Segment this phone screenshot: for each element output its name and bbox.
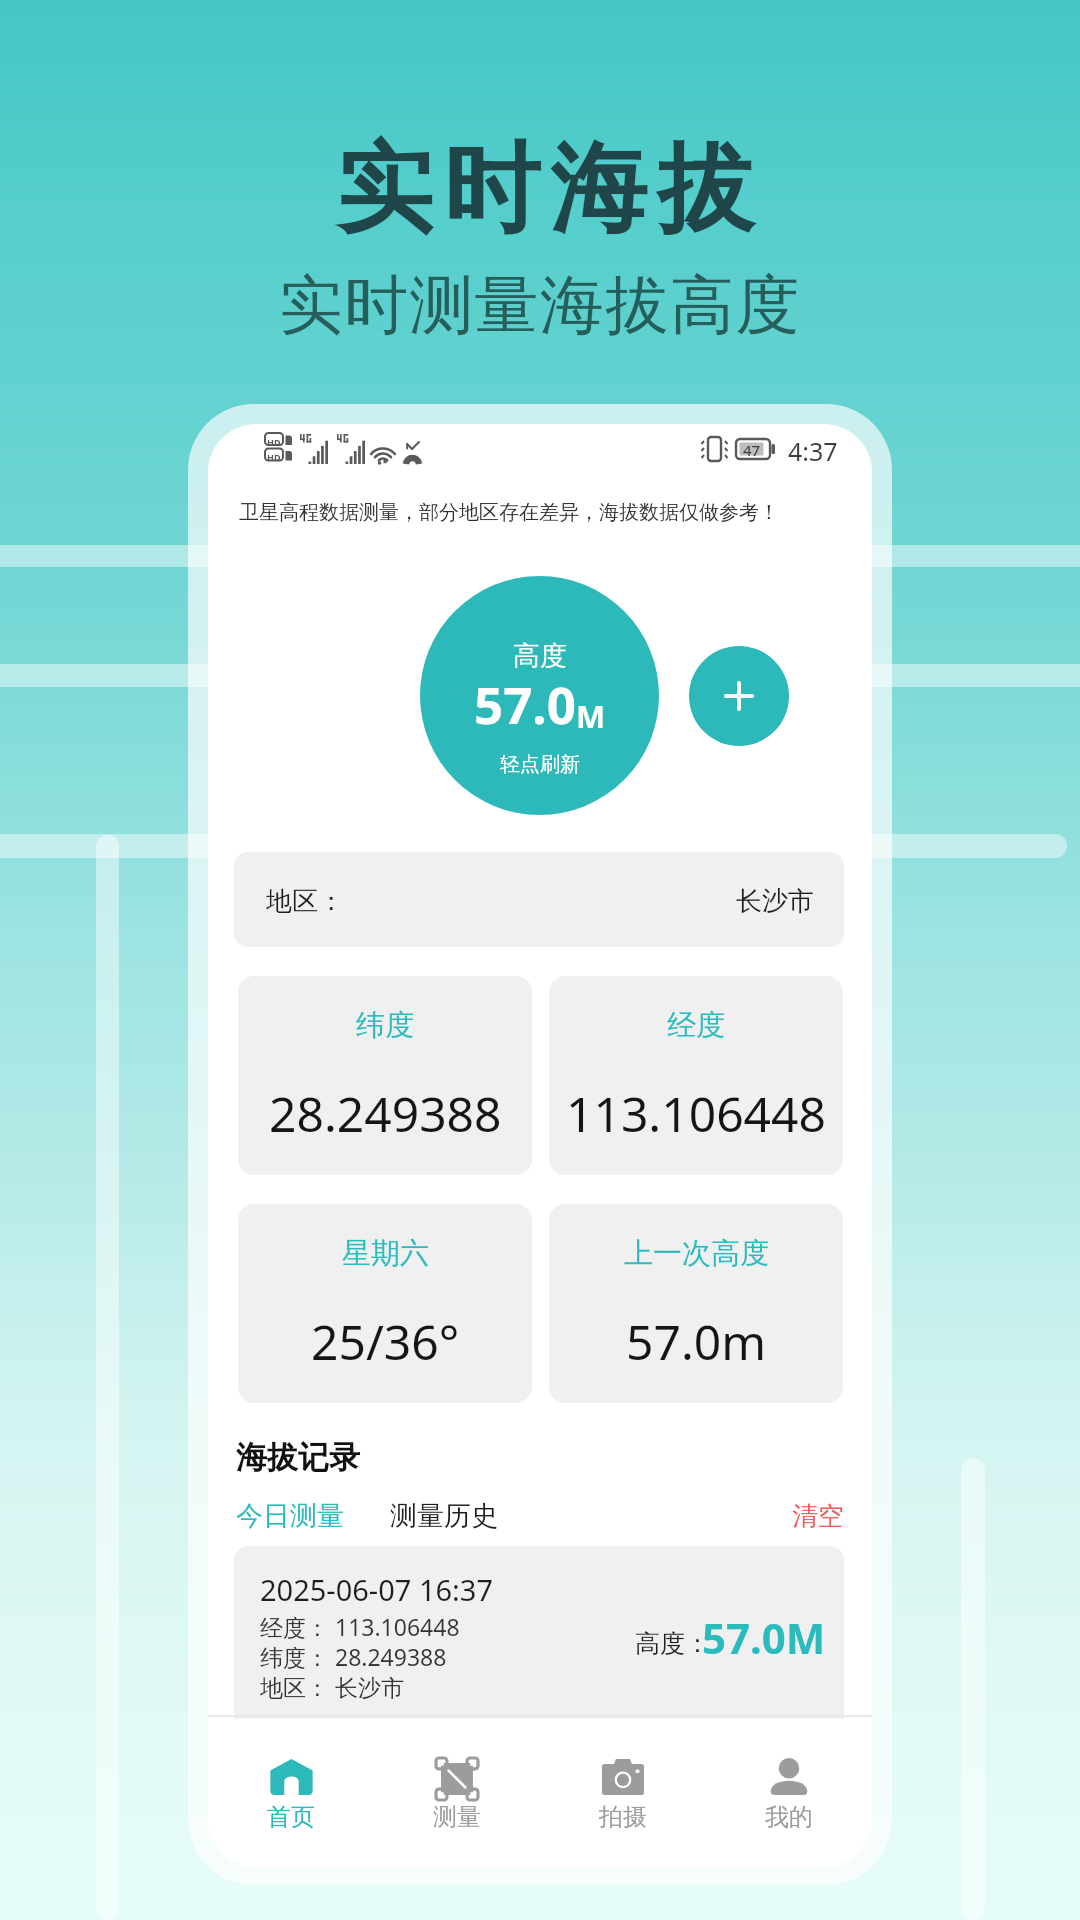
staticText: 57.0M: [702, 1609, 826, 1666]
button[interactable]: 今日测量: [236, 1492, 344, 1540]
button[interactable]: 测量: [374, 1717, 540, 1832]
button[interactable]: 测量历史: [390, 1492, 498, 1540]
staticText: 实时海拔: [331, 129, 759, 251]
staticText: 首页: [267, 1802, 315, 1832]
staticText: 卫星高程数据测量，部分地区存在差异，海拔数据仅做参考！: [239, 500, 779, 525]
button[interactable]: 纬度: [238, 976, 532, 1175]
staticText: 测量历史: [390, 1499, 498, 1533]
staticText: M: [576, 695, 606, 737]
button[interactable]: 首页: [208, 1717, 374, 1832]
staticText: 今日测量: [236, 1499, 344, 1533]
staticText: 海拔记录: [236, 1438, 360, 1477]
staticText: 我的: [765, 1802, 813, 1832]
staticText: 地区： 长沙市: [260, 1671, 404, 1702]
staticText: 57.0m: [626, 1309, 767, 1374]
button[interactable]: 星期六: [238, 1204, 532, 1403]
staticText: 57.0: [474, 669, 576, 738]
button[interactable]: 清空: [792, 1492, 844, 1540]
staticText: 轻点刷新: [500, 752, 580, 777]
staticText: 经度: [667, 1007, 725, 1044]
staticText: HD: [267, 451, 281, 463]
button[interactable]: Add measurement: [689, 646, 789, 746]
staticText: HD: [267, 436, 281, 448]
button[interactable]: 上一次高度: [549, 1204, 843, 1403]
staticText: 25/36°: [311, 1309, 460, 1374]
staticText: 4:37: [788, 434, 838, 468]
button[interactable]: 地区：: [234, 852, 844, 947]
staticText: 高度: [513, 639, 567, 673]
staticText: 高度：: [635, 1628, 710, 1659]
staticText: 地区：: [266, 885, 344, 918]
staticText: 实时测量海拔高度: [279, 265, 801, 346]
staticText: 113.106448: [566, 1081, 826, 1146]
button[interactable]: 拍摄: [540, 1717, 706, 1832]
button[interactable]: 高度: [420, 576, 659, 815]
staticText: 拍摄: [599, 1802, 647, 1832]
staticText: 星期六: [342, 1235, 429, 1272]
staticText: 测量: [433, 1802, 481, 1832]
staticText: 清空: [792, 1500, 844, 1533]
staticText: 上一次高度: [624, 1235, 769, 1272]
staticText: 纬度: [356, 1007, 414, 1044]
button[interactable]: 经度: [549, 976, 843, 1175]
staticText: 纬度： 28.249388: [260, 1641, 447, 1672]
staticText: 长沙市: [736, 885, 814, 918]
staticText: 28.249388: [269, 1081, 502, 1146]
button[interactable]: 2025-06-07 16:37: [234, 1546, 844, 1719]
staticText: 经度： 113.106448: [260, 1611, 460, 1642]
staticText: 47: [743, 440, 761, 460]
staticText: 2025-06-07 16:37: [260, 1570, 494, 1609]
button[interactable]: 我的: [706, 1717, 872, 1832]
